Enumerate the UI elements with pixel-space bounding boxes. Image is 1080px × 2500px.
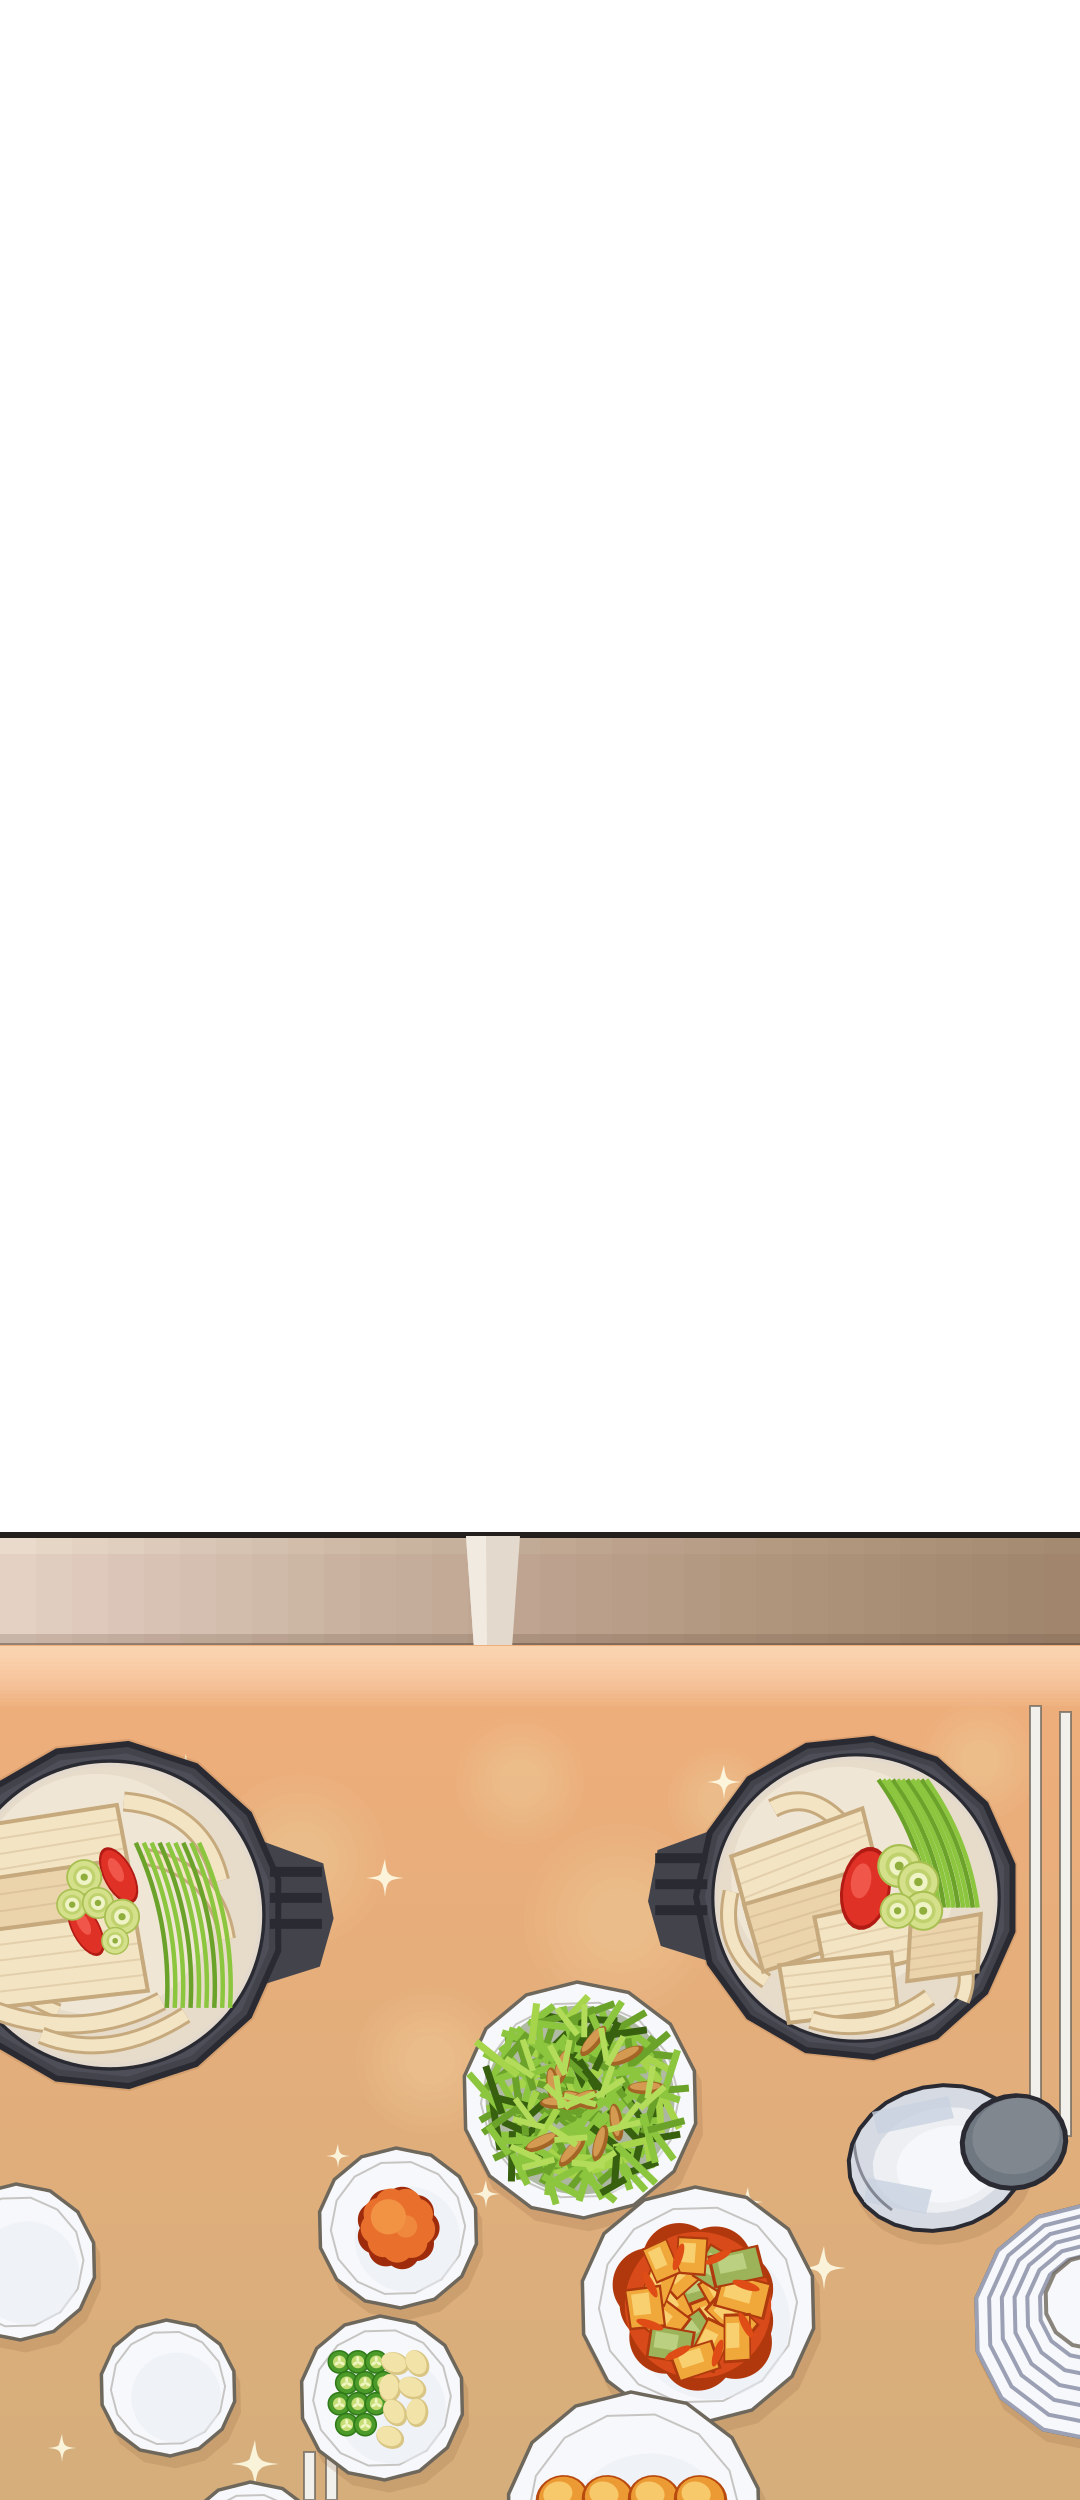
button[interactable] <box>0 0 1080 2500</box>
